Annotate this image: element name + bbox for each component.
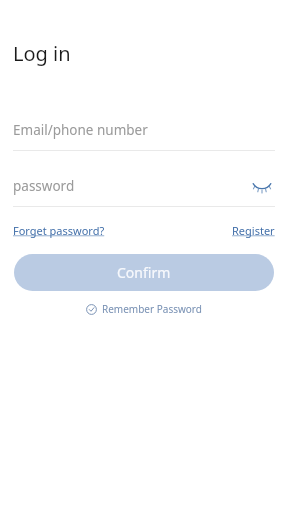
- staticText: password: [13, 177, 75, 195]
- staticText: Confirm: [117, 263, 171, 282]
- staticText: Register: [232, 223, 275, 238]
- button[interactable]: Remember Password: [82, 299, 206, 319]
- button[interactable]: Register: [232, 223, 275, 238]
- button[interactable]: Confirm: [14, 254, 274, 291]
- button[interactable]: Email/phone number: [0, 119, 288, 151]
- button[interactable]: Forget password?: [13, 223, 105, 238]
- staticText: Remember Password: [102, 302, 202, 316]
- staticText: Forget password?: [13, 223, 105, 238]
- staticText: Log in: [13, 40, 71, 67]
- staticText: Email/phone number: [13, 121, 148, 139]
- button[interactable]: Show password: [249, 175, 275, 197]
- button[interactable]: password: [13, 175, 249, 197]
